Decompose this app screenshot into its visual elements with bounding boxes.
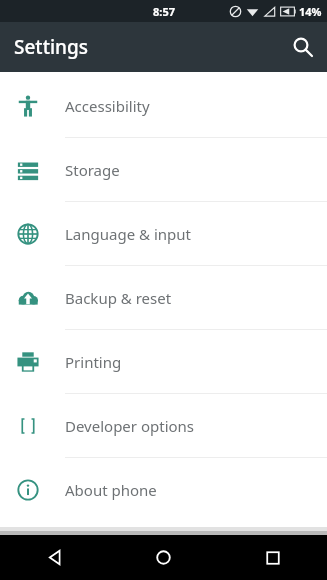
staticText: Language & input [65, 224, 191, 244]
button[interactable]: Search [279, 23, 327, 71]
staticText: About phone [65, 480, 157, 500]
button[interactable]: Backup & reset [0, 266, 327, 330]
button[interactable]: Storage [0, 138, 327, 202]
staticText: Settings [14, 34, 88, 60]
button[interactable]: Home [109, 535, 218, 580]
button[interactable]: Printing [0, 330, 327, 394]
staticText: Printing [65, 352, 122, 372]
button[interactable]: Accessibility [0, 74, 327, 138]
staticText: 14% [299, 4, 322, 19]
button[interactable]: About phone [0, 458, 327, 522]
staticText: Accessibility [65, 96, 150, 116]
staticText: Developer options [65, 416, 195, 436]
button[interactable]: Language & input [0, 202, 327, 266]
button[interactable]: Developer options [0, 394, 327, 458]
button[interactable]: Recent apps [218, 535, 327, 580]
staticText: 8:57 [153, 4, 175, 19]
staticText: Storage [65, 160, 120, 180]
staticText: Backup & reset [65, 288, 172, 308]
button[interactable]: Back [0, 535, 109, 580]
